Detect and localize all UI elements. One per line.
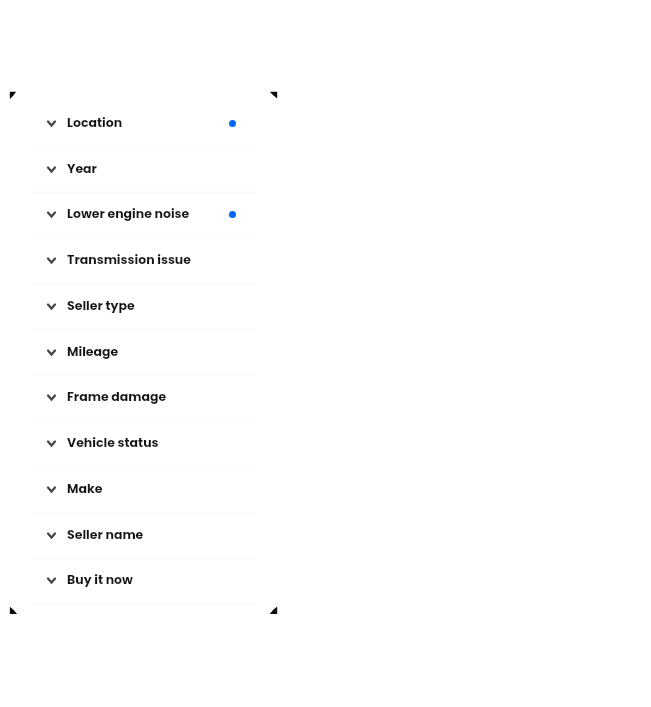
staticText: Frame damage xyxy=(67,388,167,405)
button[interactable]: Frame damage xyxy=(32,374,256,419)
button[interactable]: Location xyxy=(32,100,256,145)
staticText: Seller type xyxy=(67,297,135,314)
staticText: Lower engine noise xyxy=(67,205,190,222)
button[interactable]: Mileage xyxy=(32,329,256,374)
staticText: Seller name xyxy=(67,526,144,543)
staticText: Transmission issue xyxy=(67,251,191,268)
button[interactable]: Seller name xyxy=(32,512,256,557)
staticText: Buy it now xyxy=(67,571,133,588)
button[interactable]: Make xyxy=(32,466,256,511)
staticText: Vehicle status xyxy=(67,434,159,451)
button[interactable]: Year xyxy=(32,146,256,191)
staticText: Location xyxy=(67,114,123,131)
button[interactable]: Vehicle status xyxy=(32,420,256,465)
button[interactable]: Seller type xyxy=(32,283,256,328)
staticText: Year xyxy=(67,160,97,177)
button[interactable]: Transmission issue xyxy=(32,237,256,282)
button[interactable]: Buy it now xyxy=(32,557,256,602)
staticText: Make xyxy=(67,480,103,497)
button[interactable]: Lower engine noise xyxy=(32,191,256,236)
staticText: Mileage xyxy=(67,343,119,360)
